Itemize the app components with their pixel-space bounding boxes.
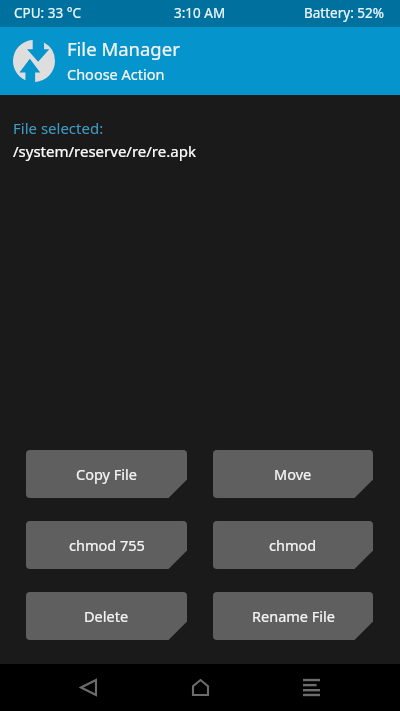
staticText: chmod 755 xyxy=(69,535,145,555)
staticText: 3:10 AM xyxy=(174,4,226,22)
button[interactable]: Move xyxy=(213,450,373,498)
staticText: /system/reserve/re/re.apk xyxy=(13,141,196,161)
staticText: Rename File xyxy=(252,606,335,626)
staticText: CPU: 33 °C xyxy=(14,4,81,22)
button[interactable]: Copy File xyxy=(26,450,187,498)
button[interactable]: chmod 755 xyxy=(26,521,187,569)
staticText: Copy File xyxy=(76,464,137,484)
staticText: Choose Action xyxy=(67,64,165,84)
button[interactable]: Back xyxy=(66,665,111,710)
button[interactable]: Rename File xyxy=(213,592,373,640)
staticText: Move xyxy=(274,464,312,484)
staticText: File selected: xyxy=(13,118,104,138)
staticText: Battery: 52% xyxy=(304,4,384,22)
button[interactable]: chmod xyxy=(213,521,373,569)
button[interactable]: Delete xyxy=(26,592,187,640)
button[interactable]: Recent apps xyxy=(289,665,334,710)
staticText: chmod xyxy=(269,535,317,555)
staticText: Delete xyxy=(84,606,129,626)
staticText: File Manager xyxy=(67,36,180,61)
button[interactable]: Home xyxy=(178,665,223,710)
